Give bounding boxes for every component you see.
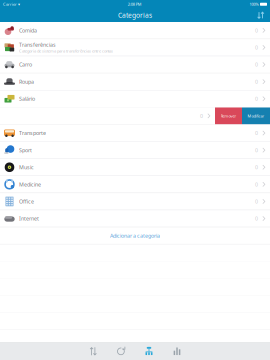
staticText: Adicionar a categoria [110, 232, 160, 239]
staticText: Transferências [19, 41, 56, 48]
staticText: 0 [200, 112, 203, 119]
staticText: Modificar [247, 113, 264, 118]
button[interactable]: Medicine [0, 176, 270, 193]
button[interactable]: Office [0, 193, 270, 210]
button[interactable]: Comida [0, 22, 270, 39]
staticText: Categoria de sistema para transferências… [19, 48, 113, 54]
button[interactable]: Transferências [79, 342, 107, 360]
staticText: 0 [255, 147, 258, 154]
staticText: Music [19, 164, 34, 171]
staticText: 0 [255, 164, 258, 171]
staticText: 0 [255, 215, 258, 222]
button[interactable]: Music [0, 159, 270, 176]
button[interactable]: Sport [0, 142, 270, 159]
staticText: Internet [19, 215, 39, 222]
staticText: Categorias [118, 11, 152, 20]
staticText: Office [19, 198, 34, 205]
button[interactable]: Sort [257, 12, 270, 19]
staticText: 0 [255, 181, 258, 188]
staticText: 0 [255, 44, 258, 51]
button[interactable]: Remover [215, 107, 242, 124]
staticText: Salário [19, 95, 35, 102]
staticText: ▾ [18, 2, 20, 6]
staticText: 0 [255, 61, 258, 68]
button[interactable]: Internet [0, 210, 270, 227]
staticText: Sport [19, 147, 32, 154]
button[interactable]: Categorias [135, 342, 163, 360]
button[interactable]: Modificar [242, 107, 270, 124]
button[interactable]: Adicionar a categoria [0, 227, 270, 244]
staticText: Carrier [3, 2, 17, 7]
staticText: 100% [250, 2, 259, 7]
staticText: Medicine [19, 181, 41, 188]
staticText: Remover [220, 113, 236, 118]
button[interactable]: Salário [0, 90, 270, 107]
staticText: 0 [255, 198, 258, 205]
staticText: Carro [19, 61, 32, 68]
staticText: 0 [255, 129, 258, 137]
button[interactable]: Transferências [0, 39, 270, 56]
button[interactable]: Relatórios [163, 342, 191, 360]
staticText: 2:08 PM [128, 2, 142, 7]
staticText: 0 [255, 78, 258, 85]
staticText: Comida [19, 27, 37, 34]
button[interactable]: Carro [0, 56, 270, 73]
staticText: Roupa [19, 78, 34, 85]
staticText: Transporte [19, 129, 46, 137]
button[interactable]: Recorrentes [107, 342, 135, 360]
button[interactable]: Roupa [0, 73, 270, 90]
staticText: 0 [255, 95, 258, 102]
button[interactable]: Transporte [0, 125, 270, 142]
staticText: 0 [255, 27, 258, 34]
